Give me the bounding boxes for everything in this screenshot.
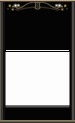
- button[interactable]: Ornate certificate frame: [0, 0, 75, 123]
